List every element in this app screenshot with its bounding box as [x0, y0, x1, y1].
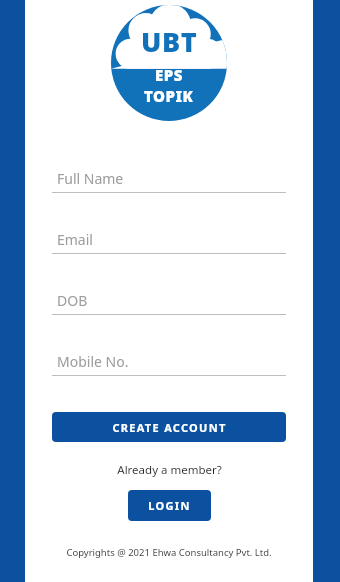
staticText: Full Name — [57, 169, 124, 188]
staticText: DOB — [57, 291, 88, 310]
staticText: EPS — [155, 65, 183, 85]
staticText: UBT — [141, 23, 198, 60]
staticText: CREATE ACCOUNT — [112, 420, 227, 435]
staticText: LOGIN — [148, 498, 191, 513]
staticText: TOPIK — [144, 86, 194, 106]
button[interactable]: LOGIN — [128, 490, 211, 521]
staticText: Email — [57, 230, 93, 249]
staticText: Already a member? — [117, 462, 222, 478]
button[interactable]: CREATE ACCOUNT — [52, 412, 286, 442]
button[interactable]: Mobile No. — [52, 352, 286, 376]
button[interactable]: Full Name — [52, 169, 286, 193]
staticText: Copyrights @ 2021 Ehwa Consultancy Pvt. … — [66, 546, 272, 559]
button[interactable]: Email — [52, 230, 286, 254]
staticText: Mobile No. — [57, 352, 129, 371]
button[interactable]: DOB — [52, 291, 286, 315]
